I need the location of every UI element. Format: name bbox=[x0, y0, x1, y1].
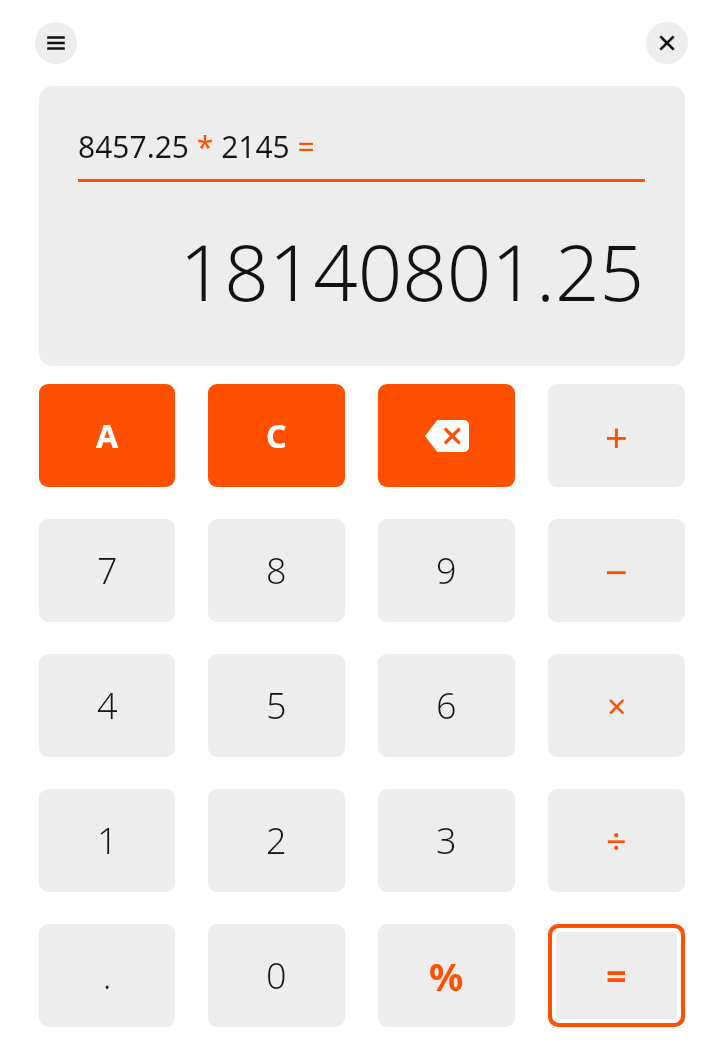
staticText: 6 bbox=[436, 681, 457, 730]
staticText: 8457.25 * 2145 = bbox=[78, 126, 315, 167]
staticText: 9 bbox=[436, 546, 457, 595]
button[interactable]: 9 bbox=[378, 519, 515, 622]
staticText: 18140801.25 bbox=[179, 218, 644, 324]
button[interactable]: 0 bbox=[208, 924, 345, 1027]
staticText: = bbox=[606, 951, 627, 1000]
button[interactable]: ÷ bbox=[548, 789, 685, 892]
staticText: 7 bbox=[97, 546, 118, 595]
button[interactable]: 2 bbox=[208, 789, 345, 892]
button[interactable]: 1 bbox=[39, 789, 175, 892]
button[interactable]: . bbox=[39, 924, 175, 1027]
staticText: − bbox=[605, 544, 628, 598]
button[interactable]: 4 bbox=[39, 654, 175, 757]
staticText: A bbox=[96, 414, 119, 458]
button[interactable]: Backspace bbox=[378, 384, 515, 487]
staticText: ÷ bbox=[606, 816, 627, 865]
button[interactable]: + bbox=[548, 384, 685, 487]
staticText: + bbox=[605, 409, 628, 463]
staticText: 4 bbox=[97, 681, 118, 730]
button[interactable]: Close bbox=[646, 22, 688, 64]
button[interactable]: C bbox=[208, 384, 345, 487]
button[interactable]: − bbox=[548, 519, 685, 622]
button[interactable]: = bbox=[556, 932, 677, 1019]
staticText: . bbox=[103, 953, 112, 999]
staticText: % bbox=[429, 950, 464, 1002]
button[interactable]: Menu bbox=[35, 22, 77, 64]
button[interactable]: 5 bbox=[208, 654, 345, 757]
staticText: × bbox=[607, 683, 627, 729]
button[interactable]: 7 bbox=[39, 519, 175, 622]
staticText: 2 bbox=[266, 816, 287, 865]
button[interactable]: 6 bbox=[378, 654, 515, 757]
button[interactable]: 3 bbox=[378, 789, 515, 892]
staticText: 3 bbox=[436, 816, 457, 865]
staticText: 0 bbox=[266, 951, 287, 1000]
staticText: C bbox=[266, 414, 287, 458]
button[interactable]: × bbox=[548, 654, 685, 757]
staticText: 1 bbox=[97, 816, 118, 865]
button[interactable]: 8 bbox=[208, 519, 345, 622]
button[interactable]: % bbox=[378, 924, 515, 1027]
staticText: 8 bbox=[266, 546, 287, 595]
staticText: 5 bbox=[266, 681, 287, 730]
button[interactable]: A bbox=[39, 384, 175, 487]
